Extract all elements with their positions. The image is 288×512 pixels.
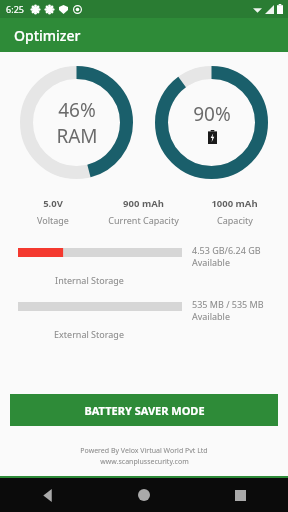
staticText: BATTERY SAVER MODE: [84, 403, 205, 418]
staticText: 6:25: [6, 3, 24, 15]
staticText: Voltage: [37, 214, 69, 226]
staticText: External Storage: [54, 328, 124, 340]
staticText: Current Capacity: [108, 214, 179, 226]
button[interactable]: Home: [96, 478, 192, 512]
staticText: 46%: [58, 97, 96, 123]
button[interactable]: BATTERY SAVER MODE: [10, 394, 278, 426]
staticText: Capacity: [217, 214, 253, 226]
button[interactable]: Back: [0, 478, 96, 512]
staticText: Internal Storage: [55, 274, 124, 286]
staticText: RAM: [56, 123, 98, 149]
staticText: 900 mAh: [123, 197, 164, 210]
staticText: Available: [192, 256, 230, 268]
staticText: Available: [192, 310, 230, 322]
staticText: 90%: [193, 101, 231, 127]
staticText: Powered By Velox Virtual World Pvt Ltd: [80, 446, 208, 456]
staticText: www.scanplussecurity.com: [100, 457, 189, 467]
staticText: Optimizer: [14, 26, 81, 45]
staticText: 5.0V: [43, 197, 63, 210]
staticText: 4.53 GB/6.24 GB: [192, 244, 261, 256]
button[interactable]: Recents: [192, 478, 288, 512]
staticText: 535 MB / 535 MB: [192, 298, 264, 310]
staticText: 1000 mAh: [211, 197, 258, 210]
